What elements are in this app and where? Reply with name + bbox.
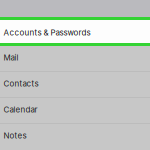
button[interactable]: Mail xyxy=(0,46,150,72)
button[interactable]: Calendar xyxy=(0,98,150,124)
staticText: Notes xyxy=(3,131,26,140)
staticText: Contacts xyxy=(3,79,38,88)
staticText: Accounts & Passwords xyxy=(3,28,90,37)
button[interactable]: Contacts xyxy=(0,72,150,98)
staticText: Mail xyxy=(3,53,18,62)
button[interactable]: Notes xyxy=(0,124,150,149)
button[interactable]: Accounts & Passwords xyxy=(0,20,150,43)
staticText: Calendar xyxy=(3,105,37,114)
